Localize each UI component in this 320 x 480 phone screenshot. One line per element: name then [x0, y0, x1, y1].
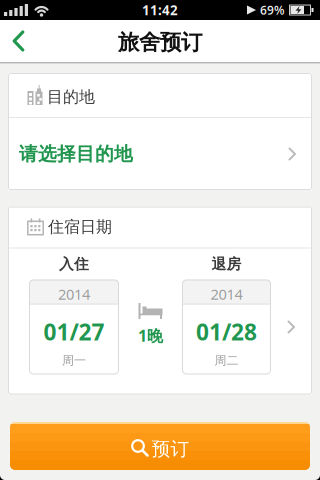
staticText: 请选择目的地	[19, 142, 133, 165]
staticText: 2014	[58, 284, 90, 304]
staticText: 1晚	[138, 325, 163, 346]
staticText: 住宿日期	[48, 217, 112, 237]
staticText: 01/28	[196, 317, 257, 347]
button[interactable]: 入住	[8, 248, 312, 374]
staticText: 旅舍预订	[118, 29, 202, 56]
button[interactable]: 请选择目的地	[8, 118, 312, 190]
staticText: 01/27	[43, 317, 104, 347]
staticText: 2014	[210, 284, 242, 304]
staticText: 退房	[211, 255, 241, 273]
staticText: 周二	[214, 353, 238, 368]
staticText: 目的地	[47, 87, 95, 107]
button[interactable]: Back	[0, 20, 35, 62]
staticText: 周一	[62, 353, 86, 368]
staticText: 69%	[260, 2, 285, 18]
staticText: 入住	[59, 255, 89, 273]
button[interactable]: 预订	[10, 422, 310, 470]
staticText: 11:42	[142, 1, 178, 19]
staticText: 预订	[151, 437, 189, 460]
